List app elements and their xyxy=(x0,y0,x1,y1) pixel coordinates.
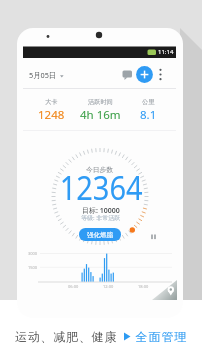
staticText: 活跃时间 xyxy=(88,98,113,106)
staticText: 5月05日 xyxy=(29,70,57,80)
button[interactable]: 5月05日 xyxy=(26,66,68,83)
button[interactable] xyxy=(119,66,136,83)
button[interactable]: 运动、减肥、健康 xyxy=(0,327,202,346)
button[interactable] xyxy=(162,281,178,298)
staticText: 等级: 非常活跃 xyxy=(81,214,121,222)
staticText: 强化燃脂 xyxy=(87,231,113,239)
staticText: 1248 xyxy=(38,107,65,123)
staticText: 3000 xyxy=(28,251,38,256)
staticText: 18:00 xyxy=(138,284,149,289)
staticText: 11:14 xyxy=(158,48,174,56)
button[interactable]: 强化燃脂 xyxy=(79,228,121,241)
staticText: 目标: 10000 xyxy=(82,206,120,216)
staticText: 公里 xyxy=(142,98,155,106)
staticText: 12364 xyxy=(60,165,143,209)
staticText: 1500 xyxy=(28,265,38,270)
staticText: 4h 16m xyxy=(80,107,121,123)
staticText: 8.1 xyxy=(140,107,157,123)
button[interactable] xyxy=(136,66,153,83)
button[interactable] xyxy=(147,231,159,243)
staticText: 06:00 xyxy=(68,284,79,289)
button[interactable] xyxy=(153,66,168,83)
staticText: 大卡 xyxy=(45,98,58,106)
staticText: 今日步数 xyxy=(86,165,114,174)
staticText: 运动、减肥、健康 xyxy=(15,329,118,344)
staticText: 12:00 xyxy=(103,284,114,289)
staticText: 全面管理 xyxy=(135,329,187,344)
